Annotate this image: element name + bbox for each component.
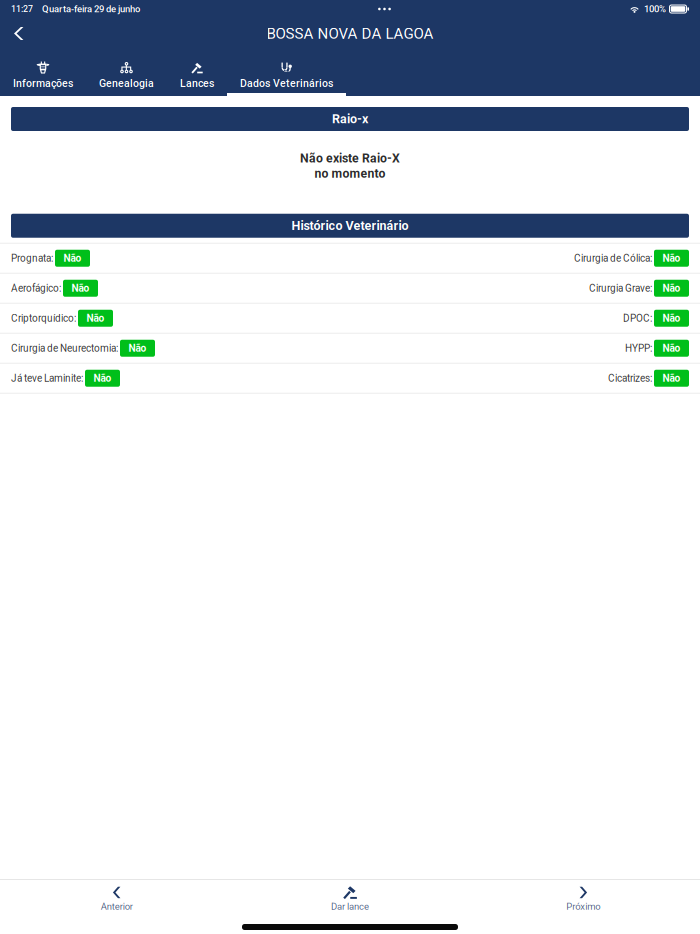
staticText: Cirurgia Grave: bbox=[589, 282, 652, 294]
staticText: Criptorquídico: bbox=[11, 312, 76, 324]
button[interactable]: Genealogia bbox=[86, 49, 167, 96]
staticText: Não bbox=[93, 372, 111, 384]
staticText: Informações bbox=[13, 77, 73, 90]
staticText: Histórico Veterinário bbox=[291, 218, 408, 233]
staticText: Não bbox=[662, 252, 680, 264]
staticText: no momento bbox=[314, 166, 385, 181]
staticText: Raio-x bbox=[332, 112, 368, 126]
staticText: Não bbox=[662, 342, 680, 354]
staticText: BOSSA NOVA DA LAGOA bbox=[266, 25, 433, 42]
button[interactable]: Voltar bbox=[0, 20, 37, 47]
staticText: Não bbox=[662, 312, 680, 324]
staticText: Dados Veterinários bbox=[240, 77, 333, 90]
staticText: HYPP: bbox=[625, 342, 652, 354]
staticText: Aerofágico: bbox=[11, 282, 61, 294]
button[interactable]: Dados Veterinários bbox=[227, 49, 346, 96]
staticText: 100% bbox=[644, 3, 666, 15]
staticText: Anterior bbox=[101, 901, 133, 912]
staticText: Cirurgia de Neurectomia: bbox=[11, 342, 118, 354]
button[interactable]: Informações bbox=[0, 49, 86, 96]
staticText: Próximo bbox=[566, 901, 600, 912]
button[interactable]: Anterior bbox=[0, 891, 233, 915]
staticText: Prognata: bbox=[11, 252, 53, 264]
staticText: Não bbox=[86, 312, 104, 324]
staticText: Não bbox=[662, 372, 680, 384]
staticText: Cirurgia de Cólica: bbox=[574, 252, 652, 264]
staticText: Genealogia bbox=[99, 77, 154, 90]
staticText: DPOC: bbox=[623, 312, 652, 324]
staticText: Não bbox=[662, 282, 680, 294]
staticText: Cicatrizes: bbox=[608, 372, 652, 384]
staticText: Não bbox=[71, 282, 89, 294]
staticText: Não bbox=[63, 252, 81, 264]
staticText: Lances bbox=[180, 77, 214, 90]
staticText: Dar lance bbox=[331, 901, 369, 912]
staticText: Quarta-feira 29 de junho bbox=[42, 3, 140, 15]
button[interactable]: Próximo bbox=[467, 891, 700, 915]
staticText: Já teve Laminite: bbox=[11, 372, 83, 384]
staticText: Não existe Raio-X bbox=[300, 151, 400, 165]
staticText: Não bbox=[128, 342, 146, 354]
button[interactable]: Dar lance bbox=[233, 891, 467, 915]
button[interactable]: Lances bbox=[167, 49, 227, 96]
staticText: 11:27 bbox=[11, 4, 33, 14]
